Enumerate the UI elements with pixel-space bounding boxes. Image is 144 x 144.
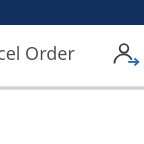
- staticText: cel Order: [0, 41, 75, 66]
- button[interactable]: Transfer order: [106, 36, 144, 70]
